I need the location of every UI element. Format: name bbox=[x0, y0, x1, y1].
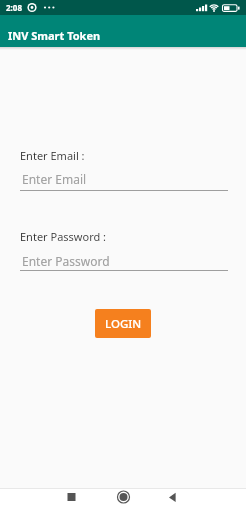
staticText: INV Smart Token bbox=[8, 28, 101, 43]
staticText: Enter Password : bbox=[20, 229, 107, 244]
button[interactable] bbox=[0, 488, 82, 512]
staticText: 2:08 bbox=[6, 2, 22, 13]
staticText: Enter Email bbox=[22, 171, 87, 187]
staticText: Enter Email : bbox=[20, 148, 85, 163]
button[interactable] bbox=[82, 488, 164, 512]
button[interactable]: Enter Password bbox=[20, 248, 228, 272]
staticText: Enter Password bbox=[22, 253, 110, 269]
button[interactable]: Enter Email bbox=[20, 166, 228, 190]
button[interactable]: LOGIN bbox=[95, 309, 151, 338]
button[interactable] bbox=[164, 488, 246, 512]
staticText: LOGIN bbox=[105, 316, 142, 332]
